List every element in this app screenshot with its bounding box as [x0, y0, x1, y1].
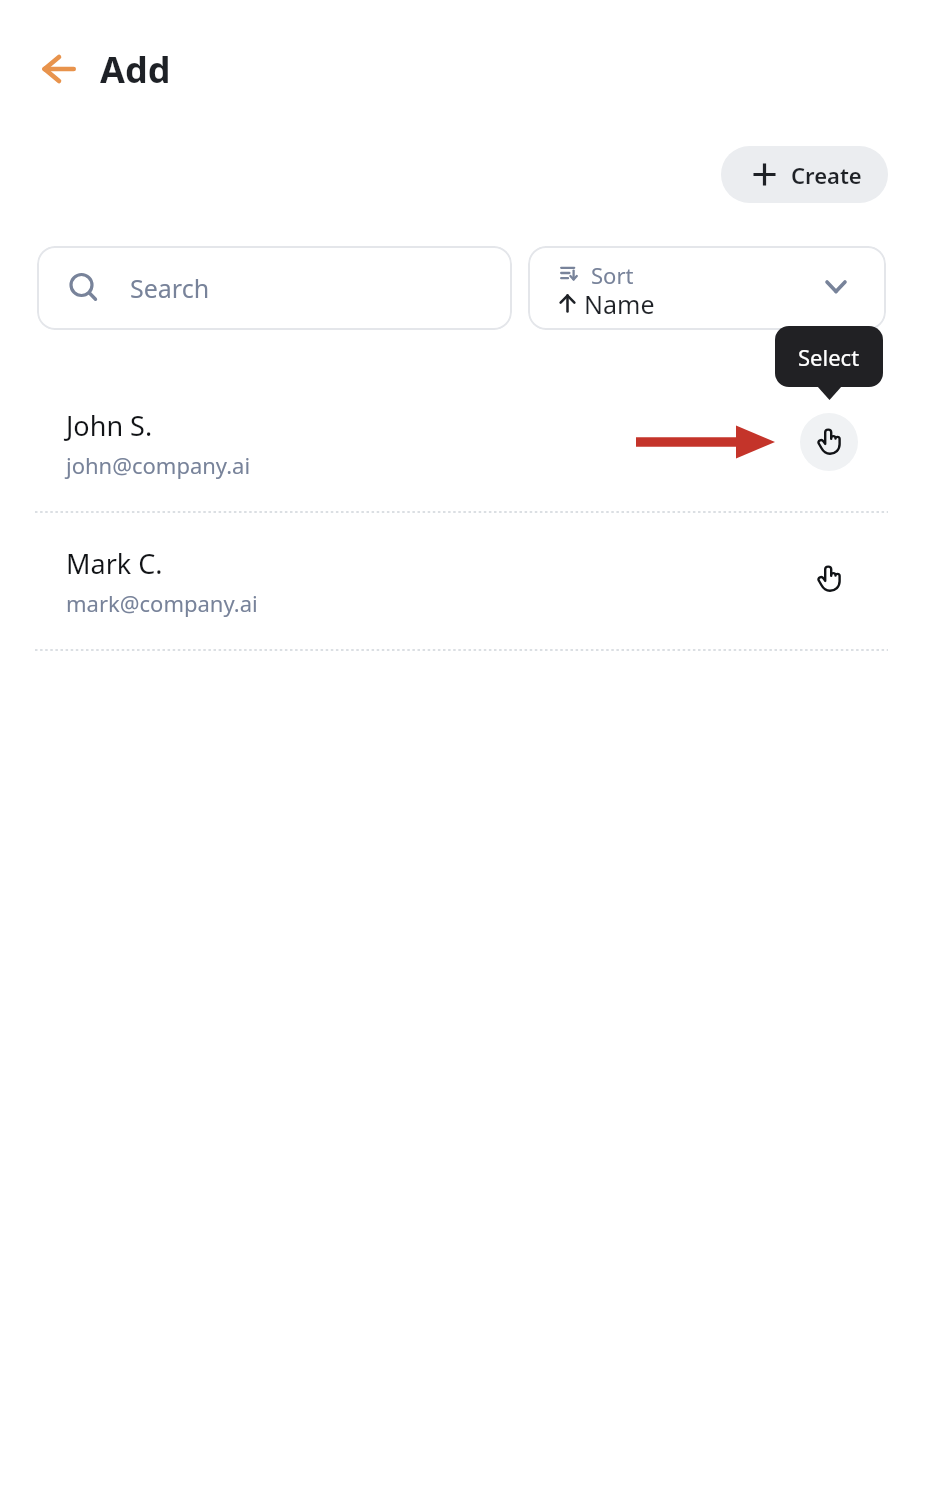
staticText: Add [100, 45, 171, 94]
staticText: Mark C. [66, 545, 163, 582]
staticText: Create [791, 160, 862, 190]
button[interactable]: Sort [528, 246, 886, 330]
staticText: Search [130, 271, 210, 305]
button[interactable]: Mark C. [0, 512, 930, 649]
button[interactable]: Select John S. [800, 413, 858, 471]
button[interactable]: Back [27, 37, 91, 101]
button[interactable]: John S. [0, 374, 930, 511]
staticText: John S. [66, 407, 153, 444]
staticText: mark@company.ai [66, 588, 258, 618]
staticText: Select [798, 342, 860, 372]
staticText: Sort [591, 260, 634, 290]
staticText: Name [584, 287, 655, 321]
button[interactable]: Create [721, 146, 888, 203]
button[interactable]: Search [37, 246, 512, 330]
button[interactable]: Select Mark C. [800, 550, 858, 608]
staticText: john@company.ai [66, 450, 251, 480]
